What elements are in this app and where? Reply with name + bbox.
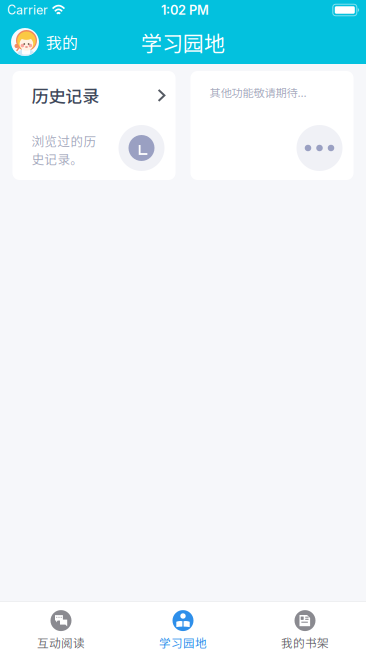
staticText: Carrier [7,2,48,17]
staticText: 浏览过的历史记录。 [31,131,96,168]
staticText: 我的书架 [281,634,329,650]
button[interactable]: 历史记录 [12,71,175,180]
button[interactable]: 互动阅读 [0,602,122,650]
staticText: 其他功能敬请期待... [209,84,306,100]
staticText: 互动阅读 [37,634,85,650]
button[interactable]: 我的书架 [244,602,366,650]
staticText: 我的 [46,30,78,54]
staticText: 历史记录 [31,83,99,108]
staticText: 学习园地 [141,27,225,57]
button[interactable]: 学习园地 [122,602,244,650]
button[interactable]: 我的 [0,20,88,64]
staticText: 1:02 PM [161,2,209,18]
staticText: 学习园地 [159,634,207,650]
button[interactable]: 其他功能敬请期待... [190,71,353,180]
